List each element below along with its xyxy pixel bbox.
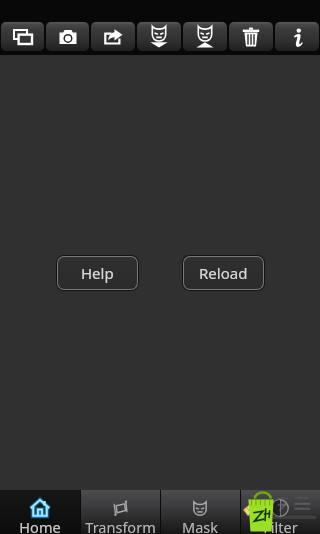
button[interactable]: Load mask <box>137 22 181 51</box>
button[interactable]: Help <box>58 257 137 289</box>
button[interactable]: Delete <box>229 22 273 51</box>
button[interactable]: Filter <box>240 490 320 534</box>
button[interactable]: Save mask <box>183 22 227 51</box>
staticText: Home <box>19 517 61 534</box>
staticText: Help <box>81 263 114 283</box>
staticText: Reload <box>199 263 248 283</box>
staticText: Transform <box>85 517 156 534</box>
button[interactable]: Reload <box>184 257 263 289</box>
button[interactable]: Transform <box>80 490 160 534</box>
button[interactable]: Duplicate <box>1 22 44 51</box>
staticText: Filter <box>263 517 298 534</box>
button[interactable]: Home <box>0 490 80 534</box>
button[interactable]: Mask <box>160 490 240 534</box>
button[interactable]: Info <box>275 22 319 51</box>
staticText: Mask <box>182 517 218 534</box>
button[interactable]: Share <box>91 22 135 51</box>
button[interactable]: Camera <box>46 22 89 51</box>
